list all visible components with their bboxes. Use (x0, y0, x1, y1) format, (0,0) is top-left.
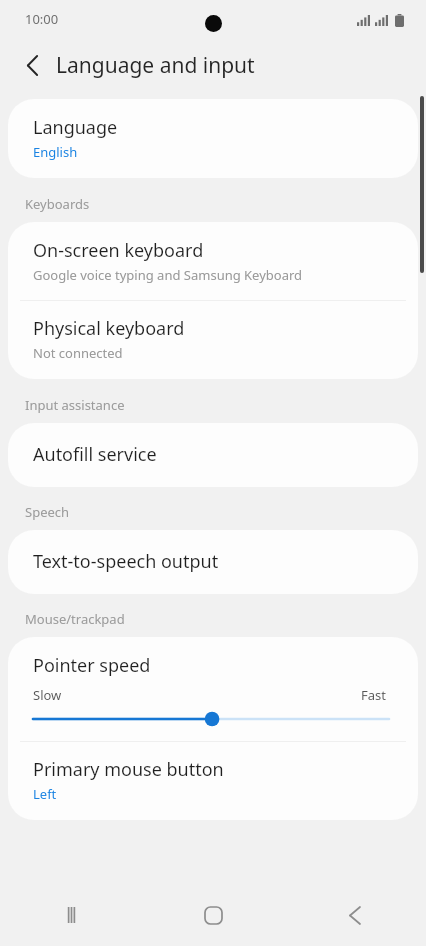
button[interactable]: On-screen keyboard (8, 222, 418, 300)
staticText: Language (33, 115, 118, 140)
staticText: Physical keyboard (33, 316, 185, 341)
staticText: Keyboards (25, 195, 90, 213)
button[interactable]: Back (14, 47, 50, 83)
staticText: English (33, 143, 78, 161)
button[interactable]: Pointer speed (8, 637, 418, 741)
button[interactable]: Autofill service (8, 423, 418, 487)
button[interactable]: Language (8, 99, 418, 178)
staticText: 10:00 (25, 10, 59, 28)
staticText: Speech (25, 503, 70, 521)
staticText: Fast (361, 686, 386, 704)
button[interactable]: Physical keyboard (8, 301, 418, 379)
staticText: Text-to-speech output (33, 549, 219, 574)
staticText: Primary mouse button (33, 757, 224, 782)
staticText: On-screen keyboard (33, 238, 204, 263)
staticText: Autofill service (33, 442, 157, 467)
staticText: Pointer speed (33, 653, 151, 678)
staticText: Language and input (56, 51, 255, 80)
button[interactable]: Back (284, 884, 426, 946)
button[interactable]: Primary mouse button (8, 742, 418, 820)
staticText: Input assistance (25, 396, 125, 414)
staticText: Mouse/trackpad (25, 610, 125, 628)
button[interactable]: Text-to-speech output (8, 530, 418, 594)
staticText: Not connected (33, 344, 123, 362)
staticText: Slow (33, 686, 62, 704)
button[interactable]: Home (142, 884, 284, 946)
button[interactable]: Recent apps (0, 884, 142, 946)
staticText: Google voice typing and Samsung Keyboard (33, 266, 303, 284)
staticText: Left (33, 785, 57, 803)
